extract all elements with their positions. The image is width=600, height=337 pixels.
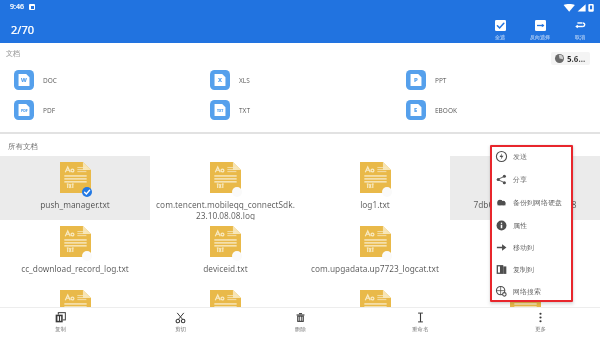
staticText: P [414,76,418,84]
staticText: 剪切 [175,326,186,333]
button[interactable] [150,284,300,337]
button[interactable]: 网络搜索 [492,280,571,302]
staticText: 移动到 [513,243,534,252]
staticText: 复制 [55,326,66,333]
staticText: 重命名 [412,326,429,333]
button[interactable]: 复制到 [492,258,571,280]
staticText: 5.6... [567,53,586,64]
staticText: cc_download_record_log.txt [21,263,129,274]
button[interactable]: 重命名 [360,308,480,337]
button[interactable]: PDF [9,96,89,124]
staticText: E [414,106,418,114]
staticText: TXT [217,108,224,113]
staticText: EBOOK [435,106,458,115]
button[interactable] [450,284,600,337]
staticText: 发送 [513,152,527,161]
button[interactable]: push_manager.txt [0,156,150,220]
staticText: 9:46 [10,2,24,12]
staticText: PPT [435,76,447,85]
staticText: deviceid.txt [203,263,248,274]
staticText: 备份到网络硬盘 [513,198,562,207]
staticText: 属性 [513,221,527,230]
staticText: 更多 [535,326,546,333]
button[interactable]: 属性 [492,214,571,236]
button[interactable]: 复制 [0,308,120,337]
staticText: 分享 [513,175,527,184]
staticText: XLS [239,76,250,85]
staticText: PDF [21,108,28,113]
staticText: 所有文档 [8,142,38,151]
staticText: W [21,76,27,84]
staticText: TXT [239,106,251,115]
staticText: log1.txt [360,199,390,210]
staticText: 全选 [495,34,505,40]
button[interactable]: com.tencent.mobileqq_connectSdk. 23.10.0… [150,156,300,220]
button[interactable]: W [9,66,89,94]
button[interactable]: TXT [205,96,285,124]
button[interactable]: E [401,96,481,124]
button[interactable]: 发送 [492,145,571,168]
staticText: 取消 [575,34,585,40]
staticText: 网络搜索 [513,287,541,296]
button[interactable] [300,284,450,337]
button[interactable]: 5.6... [555,53,586,64]
button[interactable]: log1.txt [300,156,450,220]
button[interactable]: 全选 [480,16,520,43]
button[interactable]: 剪切 [120,308,240,337]
staticText: 复制到 [513,265,534,274]
staticText: push_manager.txt [40,199,110,210]
button[interactable]: 移动到 [492,236,571,258]
button[interactable]: 取消 [560,16,600,43]
staticText: DOC [43,76,57,85]
button[interactable]: X [205,66,285,94]
button[interactable]: 分享 [492,168,571,191]
button[interactable] [450,220,600,284]
staticText: com.upgadata.up7723_logcat.txt [311,263,439,274]
button[interactable]: 更多 [480,308,600,337]
button[interactable]: cc_download_record_log.txt [0,220,150,284]
staticText: 反向选择 [530,34,550,40]
button[interactable]: com.upgadata.up7723_logcat.txt [300,220,450,284]
staticText: PDF [43,106,56,115]
button[interactable]: deviceid.txt [150,220,300,284]
button[interactable] [0,284,150,337]
staticText: 7db6700e5a9b4f3d8c2718 [473,199,577,210]
button[interactable]: 7db6700e5a9b4f3d8c2718 [450,156,600,220]
button[interactable]: 备份到网络硬盘 [492,191,571,214]
button[interactable]: P [401,66,481,94]
button[interactable]: 删除 [240,308,360,337]
staticText: X [218,76,223,84]
staticText: 文档 [6,49,20,58]
staticText: com.tencent.mobileqq_connectSdk. 23.10.0… [156,199,295,220]
staticText: 删除 [295,326,306,333]
button[interactable]: 反向选择 [520,16,560,43]
staticText: 2/70 [11,22,34,37]
